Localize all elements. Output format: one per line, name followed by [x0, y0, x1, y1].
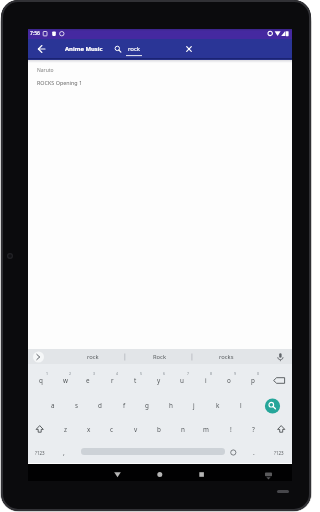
- staticText: b: [157, 425, 161, 434]
- button[interactable]: ,: [54, 441, 74, 464]
- button[interactable]: x: [77, 418, 100, 441]
- staticText: g: [145, 401, 149, 410]
- button[interactable]: c: [100, 418, 123, 441]
- staticText: i: [205, 376, 207, 385]
- staticText: ?123: [274, 450, 284, 456]
- button[interactable]: ?: [242, 418, 265, 441]
- staticText: 3: [93, 371, 96, 376]
- button[interactable]: rocks: [206, 351, 246, 363]
- staticText: t: [134, 376, 137, 385]
- button[interactable]: r: [100, 369, 124, 392]
- staticText: ?123: [35, 450, 45, 456]
- button[interactable]: [32, 41, 50, 57]
- staticText: rocks: [219, 353, 234, 361]
- staticText: 4: [116, 371, 119, 376]
- button[interactable]: s: [65, 394, 89, 417]
- button[interactable]: g: [135, 394, 159, 417]
- button[interactable]: [180, 41, 198, 57]
- staticText: r: [111, 376, 114, 385]
- staticText: f: [123, 401, 126, 410]
- staticText: 7:56: [30, 30, 40, 37]
- staticText: v: [134, 425, 138, 434]
- staticText: s: [75, 401, 79, 410]
- staticText: a: [51, 401, 55, 410]
- button[interactable]: p: [241, 369, 265, 392]
- button[interactable]: k: [206, 394, 230, 417]
- staticText: h: [169, 401, 173, 410]
- staticText: w: [63, 376, 68, 385]
- staticText: ROCKS Opening 1: [37, 79, 83, 86]
- staticText: !: [230, 425, 232, 434]
- staticText: k: [216, 401, 220, 410]
- button[interactable]: [81, 440, 225, 463]
- staticText: z: [64, 425, 67, 434]
- staticText: 6: [163, 371, 166, 376]
- staticText: n: [181, 425, 185, 434]
- button[interactable]: [269, 418, 292, 441]
- button[interactable]: [271, 350, 289, 364]
- button[interactable]: rock: [73, 351, 113, 363]
- button[interactable]: [257, 465, 280, 479]
- staticText: y: [157, 376, 161, 385]
- staticText: rock: [128, 45, 141, 53]
- button[interactable]: [190, 465, 213, 479]
- button[interactable]: a: [41, 394, 65, 417]
- button[interactable]: f: [112, 394, 136, 417]
- staticText: 1: [46, 371, 49, 376]
- staticText: m: [203, 425, 209, 434]
- staticText: 8: [210, 371, 213, 376]
- button[interactable]: [28, 63, 292, 89]
- staticText: d: [98, 401, 102, 410]
- staticText: 9: [234, 371, 237, 376]
- staticText: .: [253, 448, 255, 457]
- staticText: o: [227, 376, 231, 385]
- staticText: 2: [69, 371, 72, 376]
- button[interactable]: [30, 350, 46, 364]
- button[interactable]: l: [229, 394, 253, 417]
- staticText: p: [251, 376, 255, 385]
- button[interactable]: e: [76, 369, 100, 392]
- button[interactable]: b: [147, 418, 170, 441]
- button[interactable]: i: [194, 369, 218, 392]
- button[interactable]: [148, 465, 171, 479]
- staticText: ?: [252, 425, 255, 434]
- button[interactable]: o: [217, 369, 241, 392]
- button[interactable]: h: [159, 394, 183, 417]
- staticText: 7: [187, 371, 190, 376]
- staticText: q: [39, 376, 43, 385]
- staticText: rock: [87, 353, 99, 361]
- button[interactable]: [28, 418, 51, 441]
- button[interactable]: !: [219, 418, 242, 441]
- staticText: j: [193, 401, 195, 410]
- button[interactable]: .: [244, 441, 264, 464]
- staticText: u: [180, 376, 184, 385]
- button[interactable]: rock: [124, 43, 144, 55]
- button[interactable]: w: [53, 369, 77, 392]
- button[interactable]: [220, 441, 243, 464]
- staticText: x: [87, 425, 91, 434]
- button[interactable]: n: [171, 418, 194, 441]
- button[interactable]: q: [29, 369, 53, 392]
- staticText: Anime Music: [65, 45, 103, 53]
- button[interactable]: [261, 394, 284, 417]
- staticText: Rock: [153, 353, 166, 361]
- button[interactable]: d: [88, 394, 112, 417]
- staticText: e: [86, 376, 90, 385]
- button[interactable]: [106, 465, 129, 479]
- staticText: ,: [63, 448, 65, 457]
- button[interactable]: ?123: [28, 441, 52, 464]
- staticText: c: [110, 425, 114, 434]
- button[interactable]: u: [170, 369, 194, 392]
- button[interactable]: j: [182, 394, 206, 417]
- staticText: l: [240, 401, 242, 410]
- button[interactable]: v: [124, 418, 147, 441]
- staticText: Naruto: [37, 67, 54, 74]
- button[interactable]: m: [194, 418, 217, 441]
- button[interactable]: Rock: [139, 351, 179, 363]
- staticText: 0: [257, 371, 260, 376]
- button[interactable]: [269, 369, 292, 392]
- button[interactable]: ?123: [267, 441, 291, 464]
- button[interactable]: y: [147, 369, 171, 392]
- button[interactable]: t: [123, 369, 147, 392]
- button[interactable]: z: [54, 418, 77, 441]
